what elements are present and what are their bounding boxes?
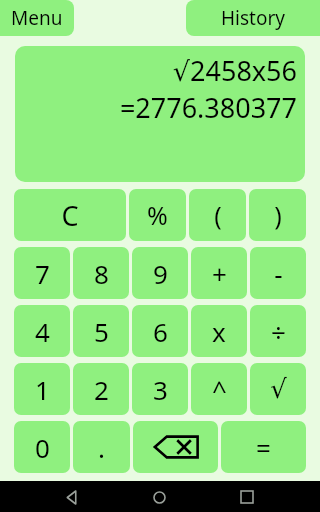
button[interactable]: 6: [132, 305, 188, 357]
button[interactable]: History: [186, 0, 320, 36]
button[interactable]: ^: [191, 363, 247, 415]
staticText: 3: [153, 372, 168, 407]
staticText: +: [212, 256, 227, 291]
staticText: ^: [212, 372, 227, 407]
staticText: -: [274, 256, 283, 291]
staticText: .: [98, 430, 105, 465]
button[interactable]: .: [73, 421, 130, 473]
button[interactable]: ÷: [250, 305, 306, 357]
staticText: ÷: [271, 314, 286, 349]
button[interactable]: Back: [57, 482, 87, 512]
button[interactable]: 9: [132, 247, 188, 299]
button[interactable]: Recent apps: [232, 482, 262, 512]
staticText: 8: [94, 256, 109, 291]
button[interactable]: 8: [73, 247, 129, 299]
staticText: 5: [94, 314, 109, 349]
button[interactable]: √2458x56: [15, 46, 305, 182]
button[interactable]: +: [191, 247, 247, 299]
button[interactable]: 4: [14, 305, 70, 357]
staticText: 0: [35, 430, 50, 465]
staticText: 4: [35, 314, 50, 349]
staticText: History: [221, 5, 285, 31]
button[interactable]: 3: [132, 363, 188, 415]
staticText: =: [256, 430, 271, 465]
staticText: (: [214, 198, 222, 232]
button[interactable]: 2: [73, 363, 129, 415]
button[interactable]: Menu: [0, 0, 74, 36]
staticText: C: [61, 197, 79, 234]
staticText: √2458x56: [172, 52, 297, 89]
staticText: 6: [153, 314, 168, 349]
staticText: Menu: [11, 5, 63, 31]
staticText: 2: [94, 372, 109, 407]
button[interactable]: (: [189, 189, 246, 241]
button[interactable]: 0: [14, 421, 70, 473]
button[interactable]: Home: [144, 482, 174, 512]
button[interactable]: %: [129, 189, 186, 241]
button[interactable]: C: [14, 189, 126, 241]
button[interactable]: 5: [73, 305, 129, 357]
button[interactable]: -: [250, 247, 306, 299]
button[interactable]: Backspace: [133, 421, 218, 473]
staticText: 9: [153, 256, 168, 291]
staticText: ): [274, 198, 282, 232]
button[interactable]: x: [191, 305, 247, 357]
button[interactable]: 7: [14, 247, 70, 299]
staticText: %: [147, 198, 168, 232]
staticText: 1: [35, 372, 50, 407]
button[interactable]: =: [221, 421, 306, 473]
staticText: √: [270, 374, 287, 404]
button[interactable]: ): [249, 189, 306, 241]
button[interactable]: √: [250, 363, 306, 415]
staticText: 7: [35, 256, 50, 291]
staticText: x: [212, 314, 226, 349]
staticText: =2776.380377: [119, 89, 297, 126]
button[interactable]: 1: [14, 363, 70, 415]
